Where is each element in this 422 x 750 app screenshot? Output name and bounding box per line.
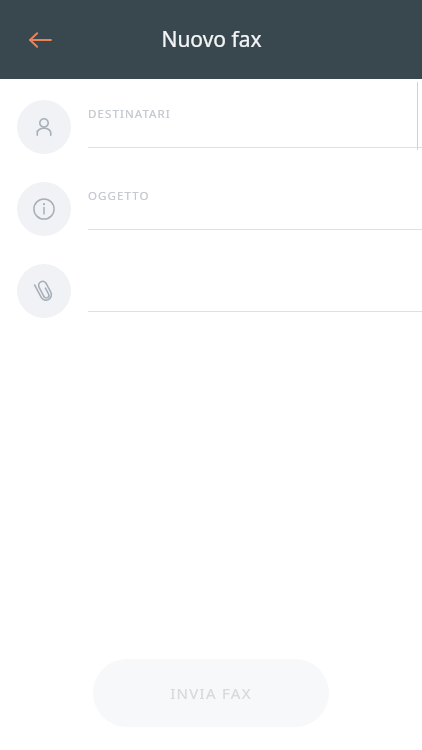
staticText: OGGETTO xyxy=(88,188,150,204)
staticText: INVIA FAX xyxy=(170,683,252,703)
staticText: DESTINATARI xyxy=(88,106,171,122)
button[interactable]: Subject xyxy=(0,171,422,253)
button[interactable]: Back xyxy=(12,12,68,68)
button[interactable]: INVIA FAX xyxy=(93,659,329,727)
button[interactable]: Subject xyxy=(17,182,71,236)
staticText: Nuovo fax xyxy=(161,25,262,54)
button[interactable]: Recipients xyxy=(0,89,422,171)
button[interactable]: Recipients xyxy=(17,100,71,154)
button[interactable]: Attachment xyxy=(17,264,71,318)
button[interactable]: Attachment xyxy=(0,253,422,335)
